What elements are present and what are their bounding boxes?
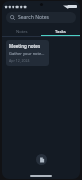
button[interactable]: Search Notes xyxy=(6,12,76,23)
staticText: Gather your notes here xyxy=(9,51,46,56)
staticText: Meeting notes xyxy=(9,43,41,49)
staticText: Search Notes xyxy=(18,14,49,21)
button[interactable]: New note xyxy=(36,154,47,165)
staticText: Apr 12, 2024 xyxy=(9,58,30,63)
staticText: Notes xyxy=(16,29,28,35)
button[interactable]: Tasks xyxy=(41,27,80,36)
button[interactable]: Meeting notes xyxy=(6,40,49,66)
staticText: Tasks xyxy=(55,29,66,35)
button[interactable]: Notes xyxy=(2,27,41,36)
